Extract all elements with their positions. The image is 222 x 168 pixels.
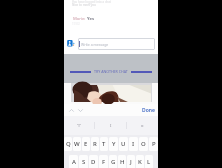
staticText: Done bbox=[142, 107, 155, 114]
button[interactable]: O bbox=[139, 137, 148, 151]
staticText: R bbox=[93, 140, 97, 148]
button[interactable]: “i” bbox=[64, 116, 94, 135]
button[interactable]: Profile bbox=[67, 39, 76, 48]
staticText: E bbox=[84, 140, 88, 148]
staticText: L bbox=[147, 158, 151, 166]
staticText: D bbox=[91, 158, 96, 166]
button[interactable]: F bbox=[99, 155, 108, 168]
staticText: Y bbox=[112, 140, 116, 148]
staticText: W bbox=[74, 140, 80, 148]
staticText: Yes bbox=[87, 16, 95, 22]
button[interactable]: J bbox=[127, 155, 135, 168]
staticText: A bbox=[72, 158, 76, 166]
button[interactable]: o bbox=[127, 116, 158, 135]
staticText: G bbox=[111, 158, 116, 166]
button[interactable]: Y bbox=[109, 137, 118, 151]
button[interactable]: W bbox=[73, 137, 81, 151]
staticText: “i” bbox=[77, 123, 81, 128]
button[interactable]: I bbox=[129, 137, 138, 151]
button[interactable]: E bbox=[82, 137, 90, 151]
button[interactable]: K bbox=[136, 155, 144, 168]
staticText: K bbox=[138, 158, 142, 166]
staticText: Nice to meet you bbox=[72, 3, 96, 7]
staticText: J bbox=[130, 158, 132, 166]
staticText: Marie: bbox=[73, 16, 87, 22]
staticText: Write a message bbox=[81, 42, 109, 47]
button[interactable]: Write a message bbox=[78, 38, 155, 50]
button[interactable]: G bbox=[109, 155, 117, 168]
staticText: I bbox=[132, 140, 135, 148]
button[interactable]: Previous bbox=[67, 106, 76, 115]
button[interactable]: I bbox=[95, 116, 126, 135]
button[interactable]: T bbox=[100, 137, 108, 151]
staticText: o bbox=[141, 123, 144, 128]
staticText: U bbox=[121, 140, 126, 148]
staticText: T bbox=[102, 140, 106, 148]
staticText: F bbox=[102, 158, 106, 166]
staticText: O bbox=[141, 140, 146, 148]
staticText: You have logged into a chat bbox=[72, 0, 111, 4]
staticText: S bbox=[82, 158, 86, 166]
staticText: I bbox=[110, 123, 112, 128]
button[interactable]: D bbox=[89, 155, 98, 168]
staticText: H bbox=[120, 158, 125, 166]
button[interactable]: L bbox=[145, 155, 153, 168]
staticText: P bbox=[152, 140, 156, 148]
button[interactable]: A bbox=[69, 155, 78, 168]
button[interactable]: U bbox=[119, 137, 128, 151]
button[interactable]: Next bbox=[76, 106, 85, 115]
staticText: Q bbox=[66, 140, 71, 148]
button[interactable]: Q bbox=[64, 137, 72, 151]
button[interactable]: Done bbox=[142, 107, 155, 114]
staticText: TRY ANOTHER CHAT bbox=[94, 69, 128, 74]
button[interactable]: R bbox=[91, 137, 99, 151]
button[interactable]: P bbox=[149, 137, 158, 151]
button[interactable]: S bbox=[79, 155, 88, 168]
button[interactable]: H bbox=[118, 155, 126, 168]
staticText: 17:02 bbox=[72, 22, 80, 26]
